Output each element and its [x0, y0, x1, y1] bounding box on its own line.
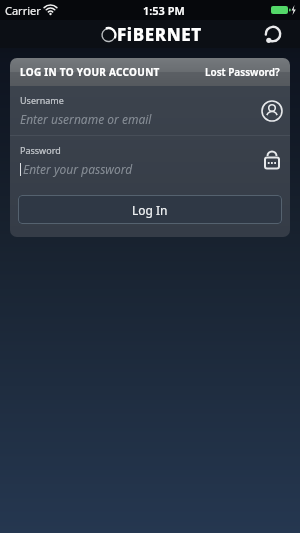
staticText: Username — [20, 94, 64, 106]
staticText: LOG IN TO YOUR ACCOUNT — [20, 65, 160, 79]
button[interactable]: Username — [20, 94, 284, 127]
staticText: Enter your password — [23, 161, 133, 177]
staticText: Log In — [132, 202, 168, 218]
staticText: Carrier — [5, 3, 41, 18]
button[interactable]: Log In — [18, 195, 282, 224]
staticText: Enter username or email — [20, 111, 152, 127]
button[interactable]: Lost Password? — [205, 65, 280, 79]
staticText: FiBERNET — [117, 23, 202, 46]
staticText: 1:53 PM — [143, 3, 185, 18]
staticText: Password — [20, 144, 61, 156]
button[interactable] — [260, 21, 286, 47]
button[interactable]: Password — [20, 144, 284, 177]
